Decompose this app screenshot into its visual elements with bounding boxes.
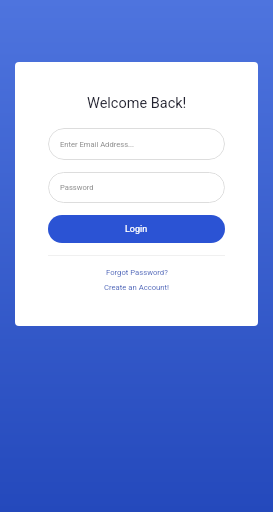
staticText: Password: [60, 183, 94, 192]
staticText: Welcome Back!: [87, 95, 187, 112]
button[interactable]: Enter Email Address...: [48, 128, 225, 160]
button[interactable]: Password: [48, 172, 225, 203]
button[interactable]: Login: [48, 215, 225, 243]
staticText: Forgot Password?: [106, 268, 168, 277]
staticText: Enter Email Address...: [60, 140, 135, 149]
button[interactable]: Forgot Password?: [104, 268, 170, 277]
staticText: Create an Account!: [104, 283, 170, 292]
button[interactable]: Create an Account!: [102, 283, 172, 292]
staticText: Login: [125, 224, 148, 235]
